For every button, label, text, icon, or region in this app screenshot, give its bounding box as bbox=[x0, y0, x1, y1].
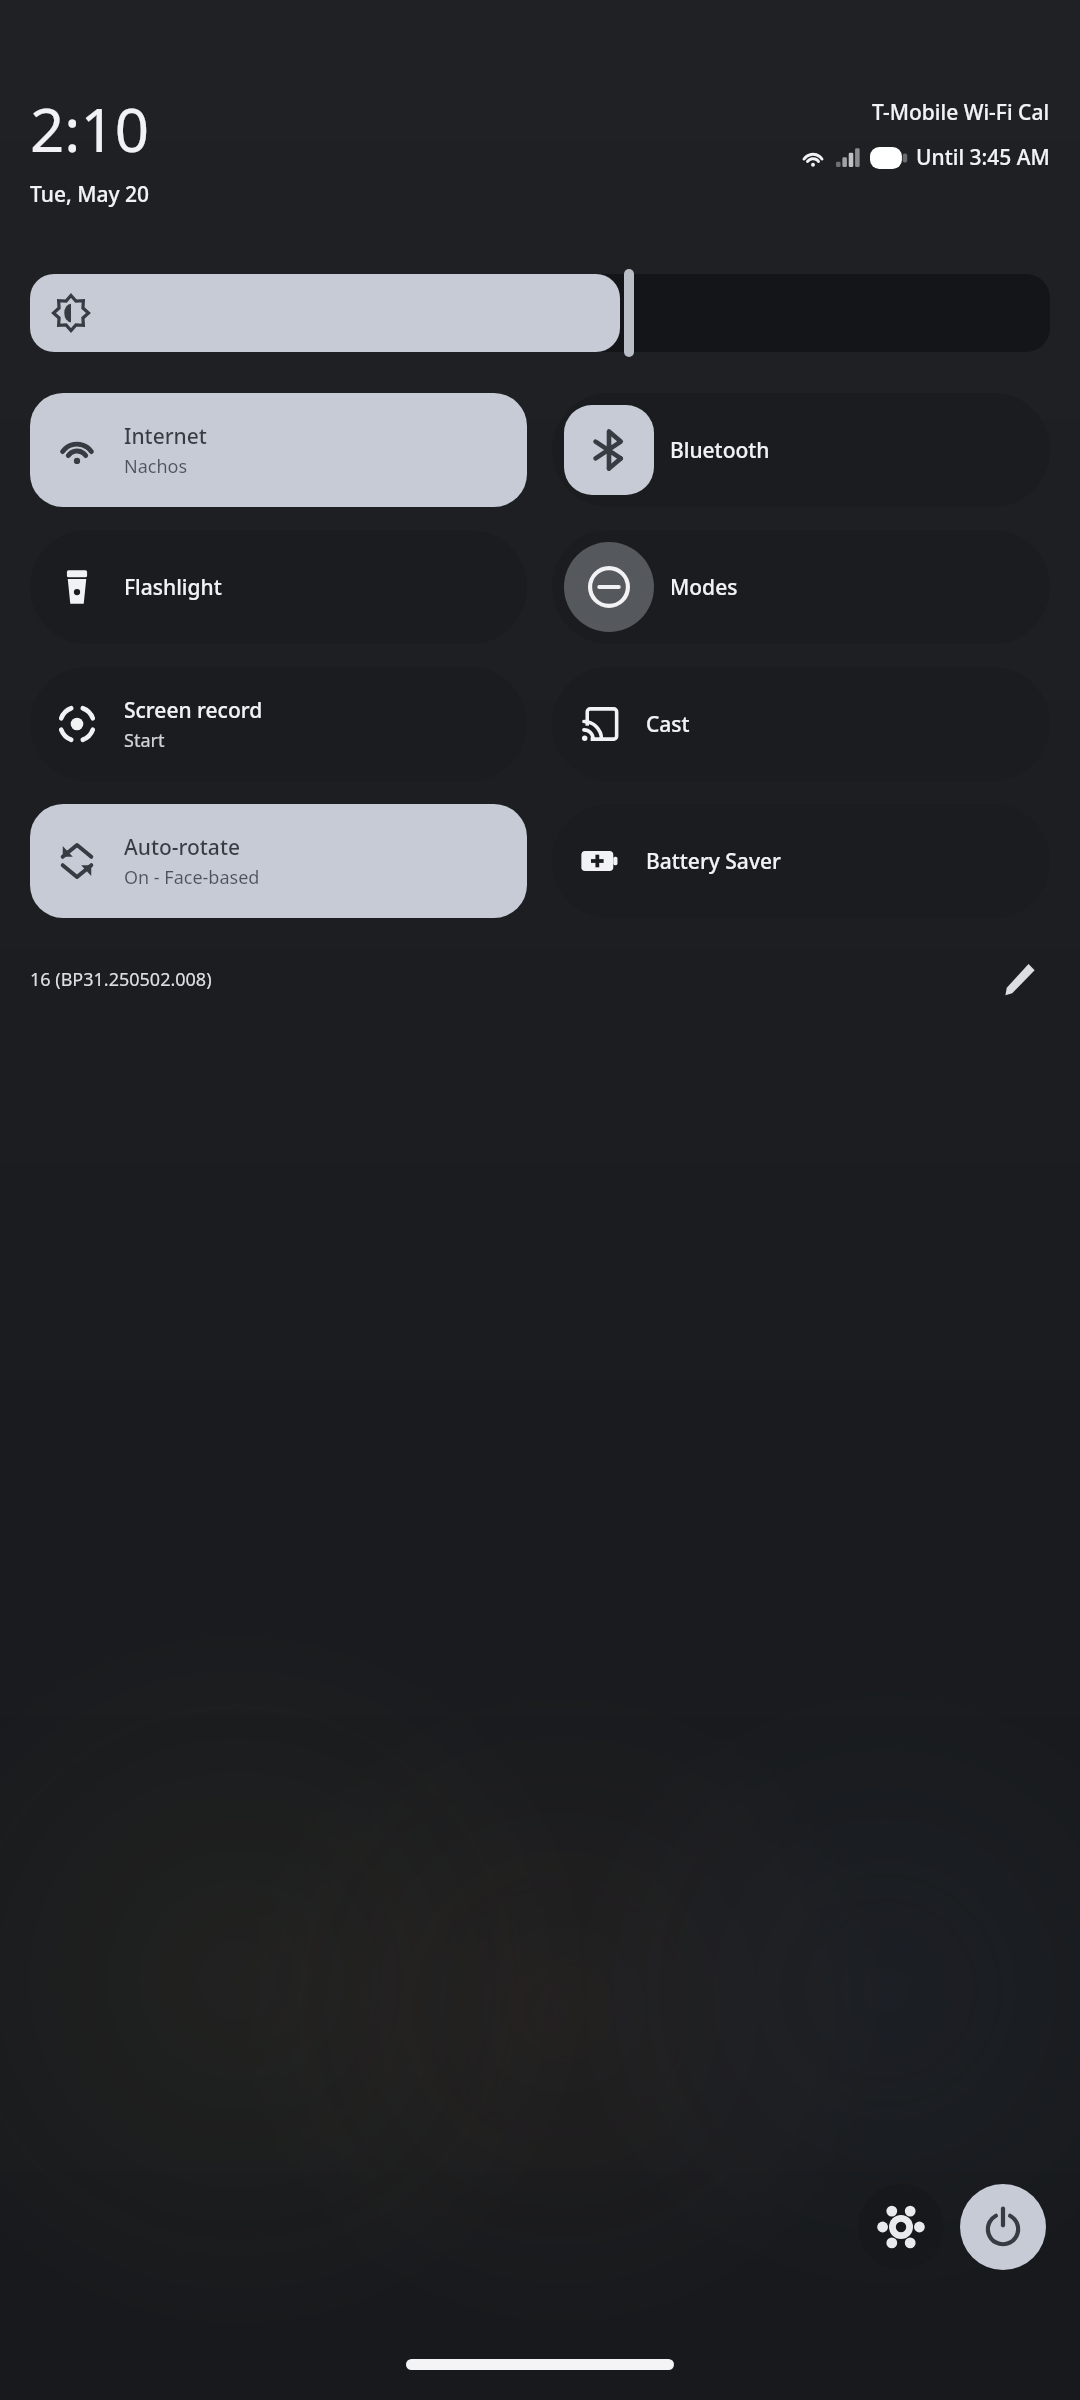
staticText: Start bbox=[124, 728, 165, 753]
staticText: Cast bbox=[646, 710, 690, 739]
staticText: Battery Saver bbox=[646, 847, 781, 876]
staticText: Nachos bbox=[124, 454, 188, 479]
button[interactable]: Screen record bbox=[30, 667, 527, 781]
staticText: T-Mobile Wi-Fi Cal bbox=[872, 98, 1050, 127]
staticText: Flashlight bbox=[124, 573, 222, 602]
button[interactable] bbox=[30, 269, 1050, 357]
button[interactable]: Flashlight bbox=[30, 530, 527, 644]
staticText: On - Face-based bbox=[124, 865, 260, 890]
staticText: Screen record bbox=[124, 696, 263, 725]
button[interactable]: Auto-rotate bbox=[30, 804, 527, 918]
staticText: 2:10 bbox=[30, 88, 150, 170]
button[interactable]: Bluetooth bbox=[552, 393, 1050, 507]
button[interactable]: Modes bbox=[552, 530, 1050, 644]
staticText: Until 3:45 AM bbox=[916, 143, 1050, 172]
button[interactable]: Power bbox=[960, 2184, 1046, 2270]
button[interactable]: Settings bbox=[858, 2184, 944, 2270]
button[interactable]: Edit tiles bbox=[988, 948, 1050, 1010]
staticText: Tue, May 20 bbox=[30, 180, 150, 209]
button[interactable]: Internet bbox=[30, 393, 527, 507]
button[interactable]: Battery Saver bbox=[552, 804, 1050, 918]
staticText: Auto-rotate bbox=[124, 833, 240, 862]
staticText: Bluetooth bbox=[670, 436, 770, 465]
staticText: 16 (BP31.250502.008) bbox=[30, 967, 212, 992]
button[interactable]: Cast bbox=[552, 667, 1050, 781]
staticText: Modes bbox=[670, 573, 738, 602]
staticText: Internet bbox=[124, 422, 207, 451]
